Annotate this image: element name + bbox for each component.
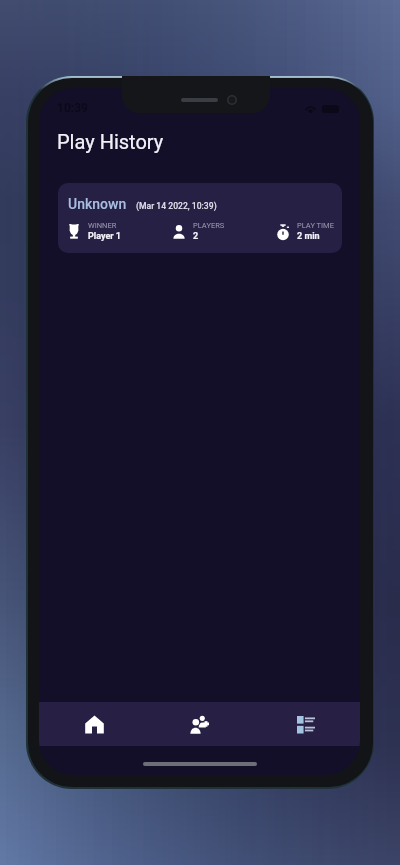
staticText: 2 min — [297, 231, 320, 242]
staticText: 2 — [193, 231, 199, 242]
button[interactable]: Home — [39, 702, 146, 746]
button[interactable]: Unknown — [58, 183, 342, 253]
staticText: PLAY TIME — [297, 221, 334, 230]
staticText: 10:39 — [57, 101, 88, 115]
staticText: Unknown — [68, 196, 127, 212]
staticText: Play History — [57, 130, 164, 153]
staticText: (Mar 14 2022, 10:39) — [136, 201, 217, 211]
staticText: PLAYERS — [193, 221, 225, 230]
button[interactable]: Play history — [253, 702, 360, 746]
button[interactable]: Add players — [146, 702, 253, 746]
staticText: WINNER — [88, 221, 117, 230]
staticText: Player 1 — [88, 231, 121, 242]
